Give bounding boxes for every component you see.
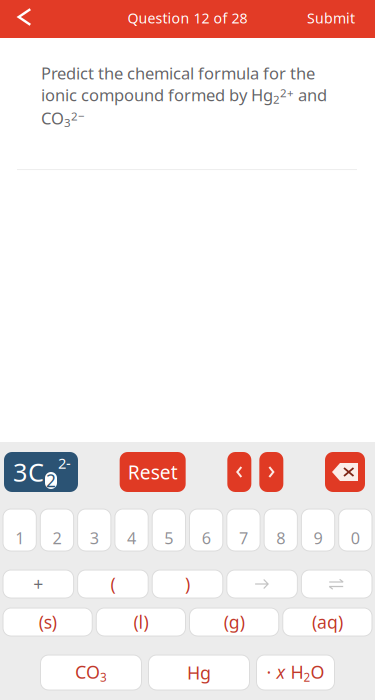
button[interactable]: + <box>3 570 74 598</box>
button[interactable]: 3 <box>78 509 111 551</box>
button[interactable]: 8 <box>264 509 297 551</box>
button[interactable]: Move cursor left <box>227 452 251 492</box>
button[interactable]: 6 <box>189 509 223 551</box>
button[interactable]: 9 <box>301 509 335 551</box>
button[interactable]: ( <box>78 570 148 598</box>
staticText: (s) <box>39 610 57 634</box>
staticText: 2 <box>46 469 56 492</box>
button[interactable]: (l) <box>96 608 185 636</box>
staticText: 2 <box>52 527 61 549</box>
staticText: 9 <box>313 527 322 549</box>
staticText: Reset <box>128 459 178 485</box>
staticText: (l) <box>133 610 148 634</box>
staticText: 5 <box>164 527 173 549</box>
button[interactable]: Submit <box>307 0 375 38</box>
staticText: C <box>28 455 44 489</box>
button[interactable]: Hg <box>148 655 249 690</box>
staticText: 2- <box>58 453 71 473</box>
button[interactable]: Back <box>0 0 49 38</box>
staticText: 0 <box>351 527 360 549</box>
staticText: 1 <box>15 527 24 549</box>
staticText: CO3 <box>75 660 107 685</box>
staticText: 3 <box>90 527 99 549</box>
button[interactable]: (aq) <box>283 608 372 636</box>
button[interactable]: 5 <box>152 509 185 551</box>
button[interactable]: (g) <box>189 608 279 636</box>
staticText: Question 12 of 28 <box>127 8 247 28</box>
staticText: Hg <box>187 660 211 685</box>
staticText: 8 <box>276 527 285 549</box>
button[interactable]: 0 <box>339 509 372 551</box>
staticText: 4 <box>127 527 136 549</box>
staticText: Submit <box>307 8 355 28</box>
button[interactable]: 2 <box>40 509 74 551</box>
staticText: 7 <box>239 527 248 549</box>
button[interactable]: Reset <box>120 452 186 492</box>
button[interactable] <box>227 570 297 598</box>
staticText: + <box>33 572 43 596</box>
button[interactable]: · x H2O <box>256 655 334 690</box>
staticText: 6 <box>202 527 211 549</box>
staticText: Predict the chemical formula for the ion… <box>41 62 327 130</box>
button[interactable]: 7 <box>227 509 260 551</box>
button[interactable]: (s) <box>3 608 92 636</box>
button[interactable]: CO3 <box>40 655 141 690</box>
staticText: ) <box>185 572 190 596</box>
button[interactable]: Move cursor right <box>259 452 283 492</box>
button[interactable] <box>301 570 372 598</box>
button[interactable]: 1 <box>3 509 36 551</box>
staticText: (g) <box>224 610 245 634</box>
staticText: (aq) <box>312 610 343 634</box>
button[interactable]: Delete <box>325 452 365 492</box>
staticText: 3 <box>13 455 27 489</box>
staticText: · x H2O <box>266 660 324 685</box>
staticText: ( <box>110 572 115 596</box>
button[interactable]: 4 <box>115 509 148 551</box>
button[interactable]: ) <box>152 570 223 598</box>
